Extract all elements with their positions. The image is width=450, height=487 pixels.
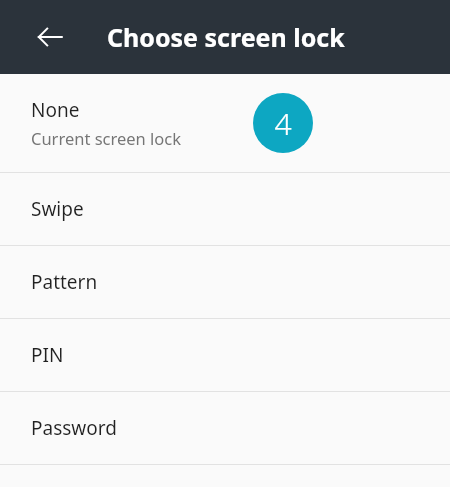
button[interactable]: Pattern — [0, 246, 450, 318]
staticText: PIN — [31, 342, 64, 368]
staticText: 4 — [274, 103, 292, 144]
staticText: Pattern — [31, 269, 98, 295]
staticText: None — [31, 97, 80, 123]
button[interactable]: PIN — [0, 319, 450, 391]
button[interactable]: Back — [26, 13, 74, 61]
staticText: Password — [31, 415, 117, 441]
staticText: Choose screen lock — [107, 20, 345, 54]
button[interactable]: Password — [0, 392, 450, 464]
staticText: Current screen lock — [31, 127, 182, 149]
staticText: Swipe — [31, 196, 84, 222]
button[interactable]: None — [0, 74, 450, 172]
button[interactable]: Swipe — [0, 173, 450, 245]
